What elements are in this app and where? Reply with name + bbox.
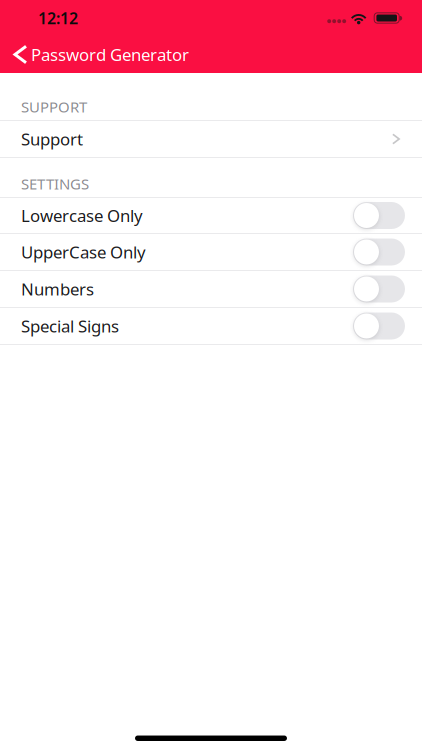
- staticText: SETTINGS: [21, 174, 89, 194]
- button[interactable]: 0: [0, 308, 422, 344]
- staticText: Lowercase Only: [21, 204, 143, 227]
- button[interactable]: 0: [0, 198, 422, 233]
- staticText: SUPPORT: [21, 97, 87, 117]
- staticText: Support: [21, 128, 83, 150]
- staticText: Numbers: [21, 278, 94, 300]
- staticText: UpperCase Only: [21, 241, 146, 263]
- staticText: Password Generator: [31, 43, 189, 66]
- staticText: Special Signs: [21, 315, 119, 337]
- button[interactable]: Support: [0, 121, 422, 157]
- button[interactable]: 0: [0, 271, 422, 307]
- button[interactable]: Back to Password Generator: [0, 36, 197, 73]
- button[interactable]: 0: [0, 234, 422, 270]
- staticText: 12:12: [38, 7, 78, 29]
